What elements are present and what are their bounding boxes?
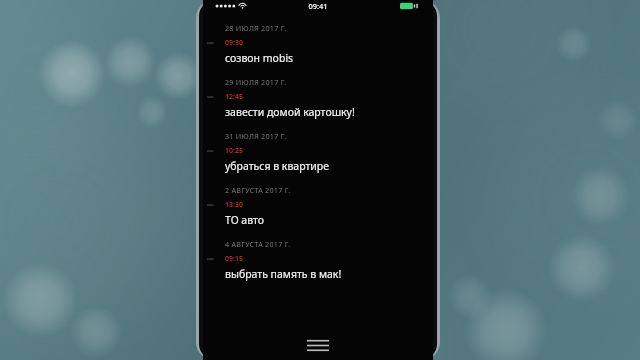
staticText: 31 ИЮЛЯ 2017 Г. — [225, 131, 287, 141]
staticText: 13:30 — [225, 200, 243, 210]
staticText: 29 ИЮЛЯ 2017 Г. — [225, 77, 287, 87]
staticText: 28 ИЮЛЯ 2017 Г. — [225, 23, 287, 33]
button[interactable]: Menu — [301, 335, 335, 355]
staticText: 09:41 — [308, 1, 328, 11]
staticText: 4 АВГУСТА 2017 Г. — [225, 239, 291, 249]
staticText: 09:15 — [225, 254, 243, 264]
staticText: 2 АВГУСТА 2017 Г. — [225, 185, 291, 195]
staticText: выбрать память в мак! — [225, 267, 342, 281]
staticText: убраться в квартире — [225, 159, 330, 173]
staticText: 12:45 — [225, 92, 243, 102]
staticText: 10:25 — [225, 146, 243, 156]
button[interactable]: 10:25 — [203, 146, 433, 178]
staticText: созвон mobis — [225, 51, 294, 65]
staticText: ТО авто — [225, 213, 265, 227]
button[interactable]: 12:45 — [203, 92, 433, 124]
button[interactable]: 09:15 — [203, 254, 433, 286]
staticText: завести домой картошку! — [225, 105, 355, 119]
staticText: 09:30 — [225, 38, 243, 48]
button[interactable]: 13:30 — [203, 200, 433, 232]
button[interactable]: 09:30 — [203, 38, 433, 70]
